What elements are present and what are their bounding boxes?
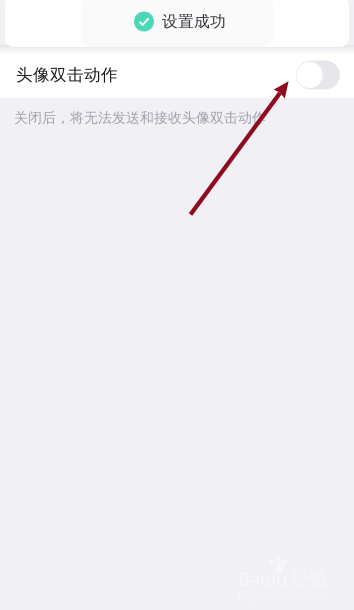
button[interactable]: 头像双击动作 [0, 52, 354, 98]
staticText: 头像双击动作 [16, 65, 118, 85]
staticText: 设置成功 [162, 12, 226, 31]
staticText: 关闭后，将无法发送和接收头像双击动作 [14, 109, 266, 127]
